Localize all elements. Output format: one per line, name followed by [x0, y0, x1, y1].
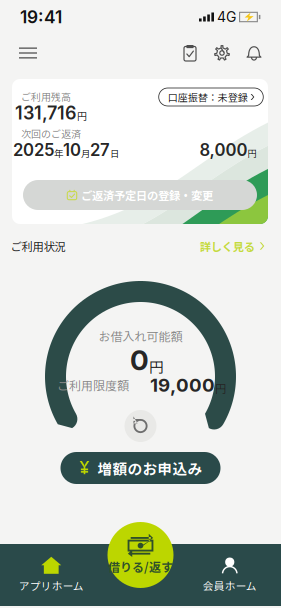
staticText: 詳しく見る [200, 238, 255, 254]
button[interactable]: 詳しく見る [200, 238, 264, 254]
button[interactable]: 借りる/返す [107, 522, 173, 588]
staticText: ご利用残高 [21, 89, 71, 104]
staticText: アプリホーム [19, 578, 84, 593]
button[interactable]: 口座振替：未登録 [159, 88, 263, 106]
staticText: 10 [63, 140, 81, 160]
staticText: 131,716 [15, 102, 77, 124]
staticText: ご利用状況 [10, 238, 65, 254]
staticText: 年 [54, 146, 63, 160]
button[interactable]: Refresh [124, 410, 156, 442]
staticText: 増額のお申込み [97, 457, 202, 479]
staticText: 借りる/返す [108, 558, 173, 575]
staticText: ご返済予定日の登録・変更 [81, 187, 213, 203]
staticText: 会員ホーム [203, 578, 257, 593]
staticText: ご利用限度額 [57, 376, 129, 394]
button[interactable]: ご返済予定日の登録・変更 [23, 180, 257, 210]
staticText: 27 [90, 140, 110, 160]
button[interactable]: 会員ホーム [178, 544, 281, 606]
staticText: 円 [247, 146, 256, 160]
staticText: 円 [77, 108, 87, 123]
staticText: 19:41 [20, 6, 62, 27]
staticText: 次回のご返済 [21, 126, 81, 141]
button[interactable]: 増額のお申込み [60, 452, 220, 484]
staticText: 口座振替：未登録 [168, 90, 248, 104]
staticText: 月 [81, 146, 90, 160]
staticText: お借入れ可能額 [98, 327, 182, 345]
staticText: 円 [149, 356, 164, 377]
staticText: 2025 [13, 140, 54, 160]
button[interactable]: Menu [11, 36, 45, 70]
button[interactable]: Settings [206, 37, 238, 69]
staticText: 19,000 [150, 374, 215, 396]
button[interactable]: Documents [174, 37, 206, 69]
staticText: 8,000 [199, 140, 247, 160]
staticText: 4G [217, 8, 236, 25]
staticText: 0 [130, 343, 149, 377]
button[interactable]: Notifications [238, 37, 270, 69]
button[interactable]: アプリホーム [0, 544, 102, 606]
staticText: 日 [110, 146, 119, 160]
staticText: 円 [215, 380, 226, 396]
